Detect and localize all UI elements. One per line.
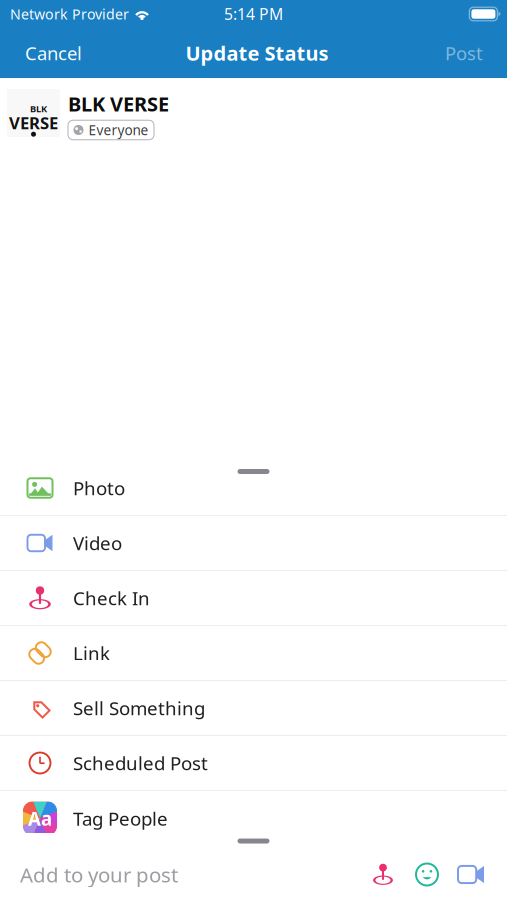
staticText: Scheduled Post [73, 750, 208, 776]
button[interactable]: Video [0, 516, 507, 571]
button[interactable]: Check In [0, 571, 507, 626]
button[interactable]: Everyone [68, 120, 154, 140]
button[interactable]: Post [431, 28, 507, 78]
staticText: Update Status [185, 39, 328, 67]
staticText: Tag People [73, 806, 168, 831]
button[interactable]: Link [0, 626, 507, 681]
button[interactable]: Check in [361, 852, 405, 896]
staticText: 5:14 PM [224, 3, 283, 25]
staticText: Add to your post [20, 861, 178, 888]
button[interactable]: Video [449, 852, 493, 896]
staticText: Cancel [25, 40, 82, 66]
button[interactable]: Photo [0, 461, 507, 516]
staticText: Photo [73, 475, 125, 501]
staticText: Network Provider [10, 4, 129, 24]
button[interactable]: Cancel [0, 28, 96, 78]
button[interactable]: Aa [0, 791, 507, 846]
staticText: Link [73, 640, 110, 666]
staticText: BLK VERSE [68, 90, 169, 117]
staticText: Sell Something [73, 695, 205, 721]
staticText: Everyone [88, 121, 148, 139]
staticText: Check In [73, 585, 150, 611]
staticText: Post [445, 40, 483, 66]
button[interactable]: Sell Something [0, 681, 507, 736]
button[interactable]: Scheduled Post [0, 736, 507, 791]
button[interactable]: Feeling or activity [405, 852, 449, 896]
staticText: Aa [28, 806, 52, 831]
staticText: VERSE [9, 111, 58, 134]
staticText: Video [73, 530, 122, 556]
staticText: BLK [30, 102, 47, 115]
